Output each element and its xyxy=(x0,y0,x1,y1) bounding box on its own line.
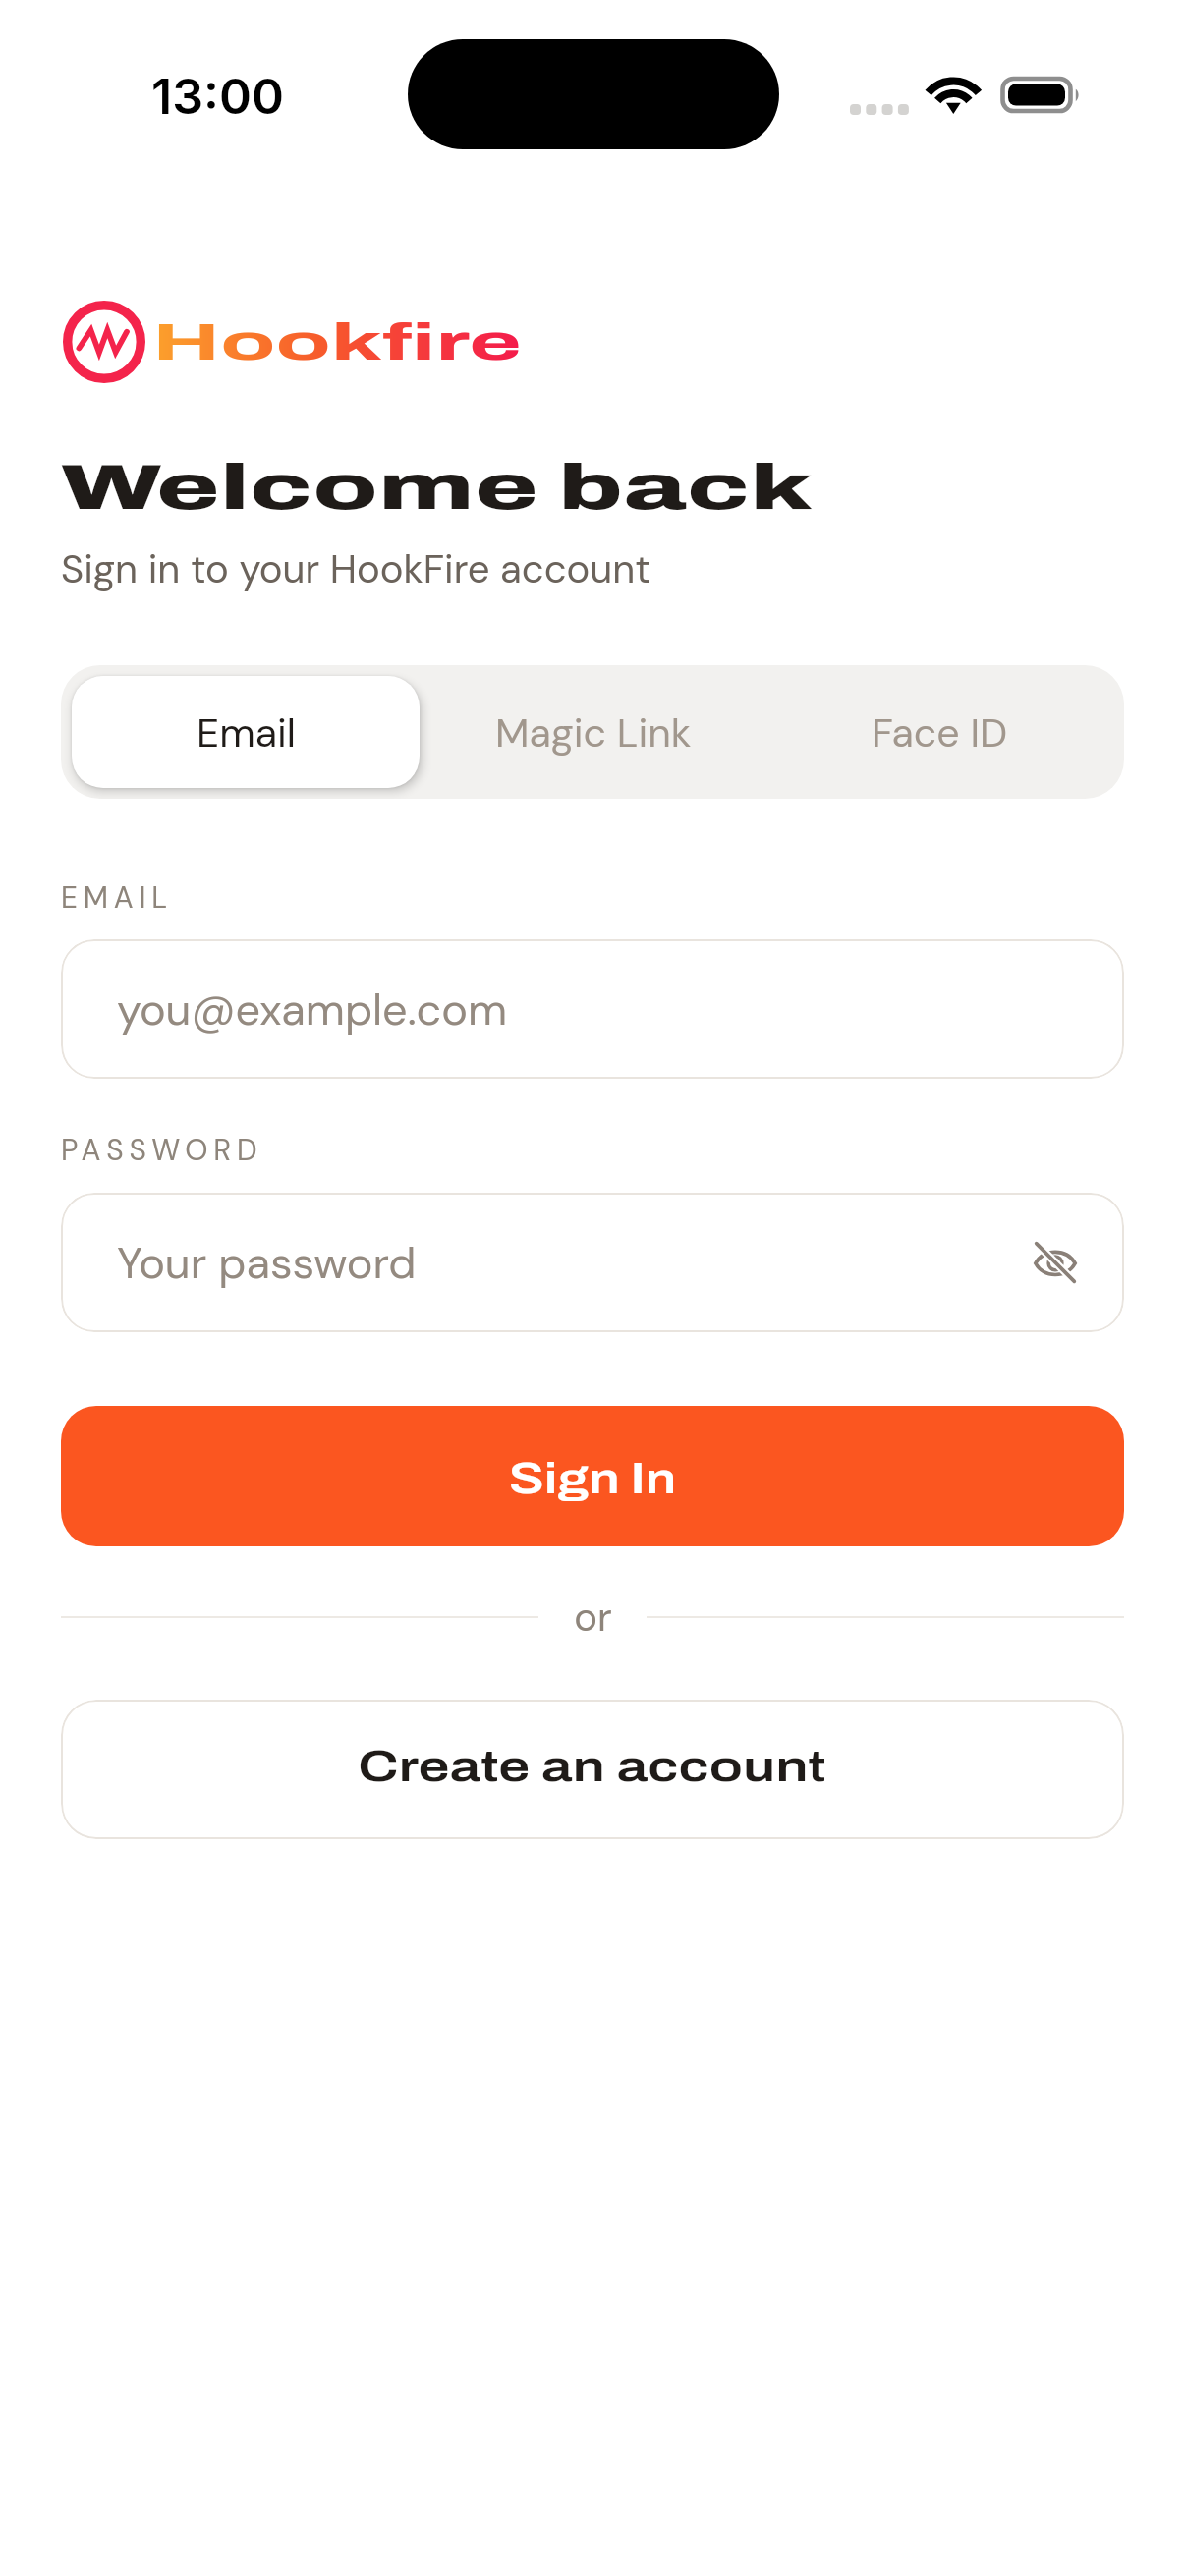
staticText: Your password xyxy=(117,1234,417,1292)
button[interactable]: you@example.com xyxy=(61,939,1124,1079)
button[interactable]: Face ID xyxy=(766,676,1113,788)
staticText: or xyxy=(574,1592,612,1643)
button[interactable]: Sign In xyxy=(61,1406,1124,1546)
staticText: you@example.com xyxy=(117,980,508,1038)
staticText: Welcome back xyxy=(61,454,813,523)
staticText: Create an account xyxy=(358,1742,827,1790)
staticText: EMAIL xyxy=(61,878,173,917)
button[interactable]: Create an account xyxy=(61,1700,1124,1839)
button[interactable]: Your password xyxy=(61,1193,1124,1332)
button[interactable]: Email xyxy=(72,676,420,788)
staticText: Sign In xyxy=(509,1454,677,1502)
button[interactable]: Show password xyxy=(1020,1227,1091,1298)
staticText: Magic Link xyxy=(495,706,692,758)
button[interactable]: Magic Link xyxy=(420,676,766,788)
staticText: Sign in to your HookFire account xyxy=(61,543,650,594)
staticText: Email xyxy=(197,706,296,758)
staticText: Hookfire xyxy=(152,315,522,369)
staticText: Face ID xyxy=(872,706,1008,758)
staticText: PASSWORD xyxy=(61,1131,263,1169)
staticText: 13:00 xyxy=(151,67,284,126)
